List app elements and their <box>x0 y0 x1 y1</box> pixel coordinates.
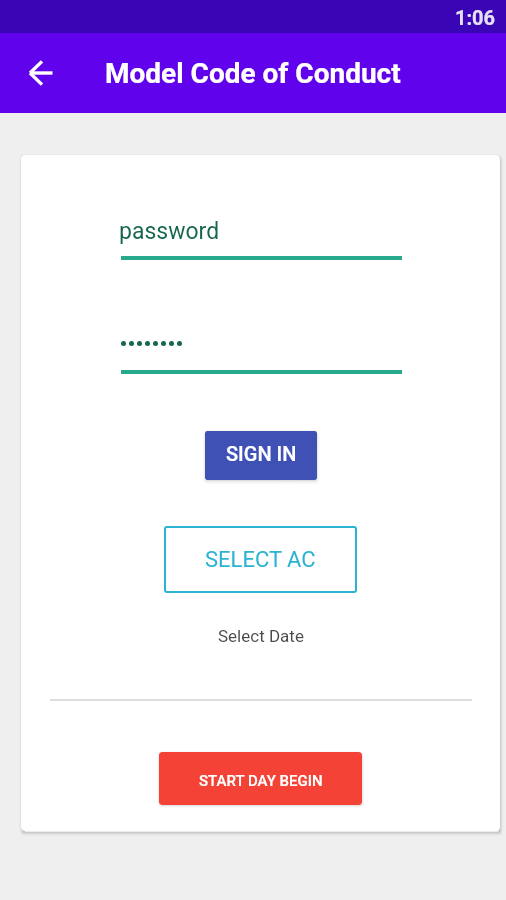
staticText: SIGN IN <box>226 442 297 465</box>
button[interactable]: Select Date <box>211 621 311 651</box>
staticText: START DAY BEGIN <box>199 772 323 790</box>
staticText: 1:06 <box>455 6 496 29</box>
button[interactable] <box>119 335 402 374</box>
button[interactable]: SIGN IN <box>205 431 317 480</box>
button[interactable]: SELECT AC <box>164 526 357 593</box>
staticText: password <box>119 218 220 245</box>
button[interactable]: Navigate back <box>16 49 64 97</box>
staticText: SELECT AC <box>205 547 316 573</box>
staticText: Model Code of Conduct <box>105 57 401 90</box>
button[interactable]: password <box>119 213 402 260</box>
staticText: Select Date <box>218 626 304 646</box>
button[interactable]: START DAY BEGIN <box>159 752 362 805</box>
